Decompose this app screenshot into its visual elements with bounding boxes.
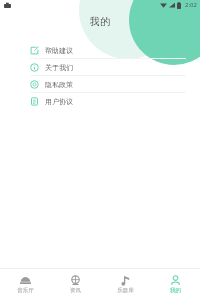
button[interactable]: 用户协议 [0, 93, 200, 109]
button[interactable]: 乐器库 [100, 268, 150, 300]
staticText: 我的 [170, 287, 181, 294]
button[interactable]: 资讯 [50, 268, 100, 300]
staticText: 2:02 [185, 1, 197, 9]
staticText: 音乐厅 [17, 287, 34, 294]
button[interactable]: 隐私政策 [0, 76, 200, 92]
button[interactable]: 我的 [150, 268, 200, 300]
staticText: 乐器库 [117, 287, 134, 294]
button[interactable]: 音乐厅 [0, 268, 50, 300]
staticText: 关于我们 [45, 63, 73, 72]
button[interactable]: 关于我们 [0, 59, 200, 75]
staticText: 资讯 [70, 287, 81, 294]
staticText: 隐私政策 [45, 80, 73, 89]
staticText: 我的 [90, 15, 110, 28]
staticText: 帮助建议 [45, 46, 73, 55]
button[interactable]: 帮助建议 [0, 42, 200, 58]
staticText: 用户协议 [45, 97, 73, 106]
